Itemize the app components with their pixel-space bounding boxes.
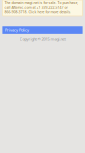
button[interactable]: Privacy Policy bbox=[2, 26, 83, 34]
staticText: The domain magi.net is for sale. To purc… bbox=[4, 0, 78, 14]
staticText: Privacy Policy bbox=[5, 27, 29, 33]
button[interactable]: The domain magi.net is for sale. To purc… bbox=[2, 0, 83, 16]
staticText: Copyright © 2015 magi.net bbox=[19, 36, 65, 42]
